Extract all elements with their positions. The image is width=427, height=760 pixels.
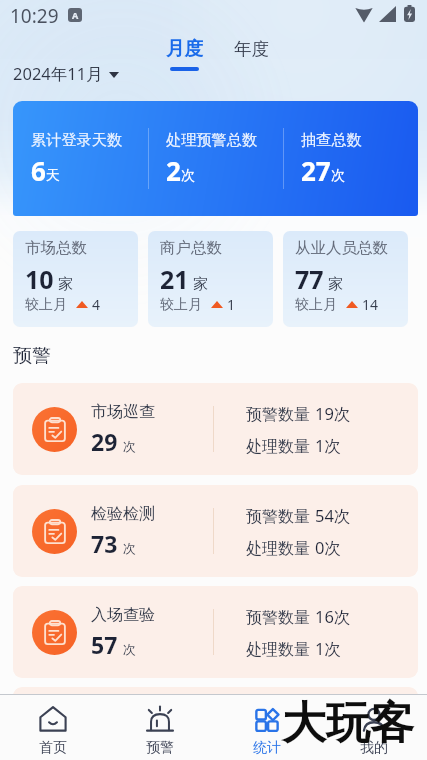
button[interactable]: 检验检测: [13, 485, 418, 577]
button[interactable]: 2024年11月: [9, 59, 123, 88]
staticText: 处理数量: [246, 638, 315, 660]
other: 首页: [39, 706, 67, 734]
button[interactable]: 统计: [213, 695, 320, 760]
staticText: 16次: [315, 605, 351, 628]
staticText: 4: [92, 295, 101, 314]
staticText: 预警: [13, 344, 51, 368]
staticText: 预警数量: [246, 707, 315, 729]
staticText: 检验检测: [91, 504, 155, 524]
staticText: 抽查总数: [301, 130, 362, 149]
staticText: 商户总数: [160, 238, 222, 258]
staticText: 快速检测: [91, 706, 155, 726]
button[interactable]: 入场查验: [13, 586, 418, 678]
staticText: 次: [123, 438, 136, 454]
button[interactable]: 月度: [159, 34, 210, 74]
staticText: 家: [193, 275, 208, 294]
staticText: 2: [166, 153, 181, 188]
button[interactable]: 快速检测: [13, 687, 418, 760]
staticText: 大玩客: [282, 696, 414, 751]
button[interactable]: 年度: [227, 35, 276, 63]
staticText: 54次: [315, 504, 351, 527]
staticText: 预警数量: [246, 505, 315, 527]
button[interactable]: 市场总数: [13, 231, 138, 327]
staticText: 2次: [315, 738, 341, 760]
staticText: 我的: [360, 739, 388, 757]
staticText: 市场巡查: [91, 402, 155, 422]
staticText: 2024年11月: [13, 62, 103, 85]
button[interactable]: 市场巡查: [13, 383, 418, 475]
staticText: 1次: [315, 637, 341, 660]
staticText: 处理预警总数: [166, 130, 258, 149]
staticText: 家: [58, 275, 73, 294]
staticText: 29: [91, 426, 118, 457]
staticText: 处理数量: [246, 537, 315, 559]
staticText: 较上月: [160, 296, 202, 314]
staticText: 10: [25, 262, 54, 296]
staticText: 次: [181, 167, 195, 185]
staticText: 1次: [315, 434, 341, 457]
staticText: 57: [91, 629, 118, 660]
staticText: 处理数量: [246, 739, 315, 760]
button[interactable]: 累计登录天数: [13, 101, 418, 216]
staticText: 较上月: [25, 296, 67, 314]
staticText: 从业人员总数: [295, 238, 388, 258]
staticText: 21: [160, 262, 189, 296]
staticText: 年度: [234, 38, 269, 60]
staticText: 预警数量: [246, 606, 315, 628]
button[interactable]: 预警: [106, 695, 213, 760]
staticText: 家: [328, 275, 343, 294]
staticText: 处理数量: [246, 435, 315, 457]
staticText: 较上月: [295, 296, 337, 314]
staticText: 首页: [39, 739, 67, 757]
staticText: 0次: [315, 536, 341, 559]
staticText: 预警: [146, 739, 174, 757]
staticText: 27: [301, 153, 331, 188]
other: 预警: [146, 706, 174, 734]
staticText: 73: [91, 528, 118, 559]
button[interactable]: 商户总数: [148, 231, 273, 327]
staticText: 累计登录天数: [31, 130, 123, 149]
staticText: 月度: [166, 37, 203, 60]
staticText: 19次: [315, 402, 351, 425]
staticText: 统计: [253, 739, 281, 757]
staticText: 次: [123, 540, 136, 556]
staticText: 10:29: [10, 3, 59, 29]
staticText: 次: [331, 167, 345, 185]
staticText: 入场查验: [91, 605, 155, 625]
button[interactable]: 我的: [320, 695, 427, 760]
staticText: 6: [31, 153, 46, 188]
other: 统计: [253, 706, 281, 734]
staticText: 1: [227, 295, 236, 314]
other: 我的: [360, 706, 388, 734]
staticText: 77: [295, 262, 324, 296]
button[interactable]: 从业人员总数: [283, 231, 408, 327]
staticText: 12次: [315, 706, 351, 729]
staticText: 天: [46, 167, 60, 185]
button[interactable]: 首页: [0, 695, 106, 760]
staticText: 预警数量: [246, 403, 315, 425]
staticText: 次: [123, 641, 136, 657]
staticText: 14: [362, 295, 379, 314]
staticText: 市场总数: [25, 238, 87, 258]
staticText: A: [72, 9, 79, 21]
